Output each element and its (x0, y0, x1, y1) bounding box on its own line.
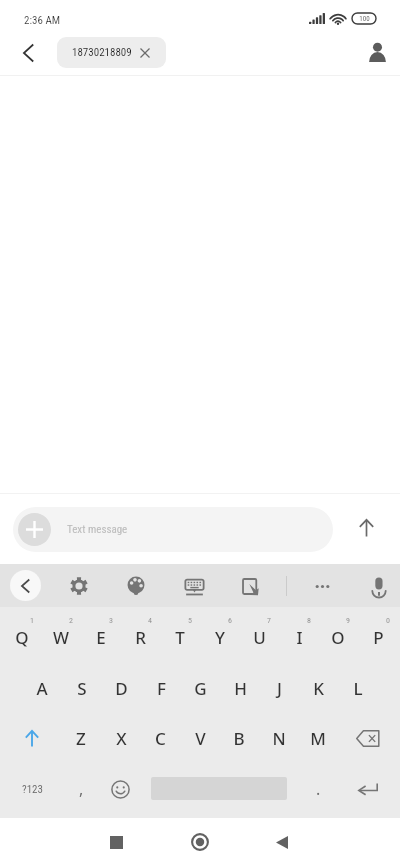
button[interactable]: A (23, 664, 61, 712)
staticText: 5 (188, 616, 192, 625)
staticText: Z (76, 727, 86, 750)
button[interactable]: Y (201, 613, 239, 661)
staticText: Text message (67, 523, 128, 536)
button[interactable]: Settings (61, 568, 97, 604)
staticText: N (272, 727, 286, 750)
button[interactable]: Z (62, 714, 100, 762)
button[interactable]: Recent apps (93, 819, 140, 865)
button[interactable]: T (161, 613, 199, 661)
staticText: 8 (307, 616, 311, 625)
staticText: M (310, 727, 326, 750)
staticText: W (53, 626, 69, 649)
staticText: 3 (109, 616, 113, 625)
button[interactable]: , (63, 765, 99, 813)
button[interactable]: Add attachment (13, 507, 333, 552)
button[interactable]: P (359, 613, 397, 661)
staticText: B (233, 727, 245, 750)
staticText: 1 (30, 616, 34, 625)
button[interactable]: F (142, 664, 180, 712)
button[interactable]: Q (3, 613, 41, 661)
button[interactable]: Emoji (102, 765, 139, 813)
staticText: S (77, 677, 87, 700)
button[interactable]: Hide toolbar (10, 570, 41, 601)
staticText: 2:36 AM (24, 14, 61, 27)
button[interactable]: Back (8, 33, 48, 73)
button[interactable]: I (280, 613, 318, 661)
staticText: L (353, 677, 363, 700)
button[interactable]: H (221, 664, 259, 712)
button[interactable]: Theme (118, 568, 154, 604)
button[interactable]: K (299, 664, 337, 712)
staticText: H (234, 677, 247, 700)
staticText: G (194, 677, 207, 700)
button[interactable]: Handwriting (232, 568, 268, 604)
button[interactable]: D (102, 664, 140, 712)
staticText: X (116, 727, 127, 750)
button[interactable]: V (181, 714, 219, 762)
staticText: R (135, 626, 146, 649)
button[interactable]: R (121, 613, 159, 661)
button[interactable]: Shift (12, 714, 51, 762)
button[interactable]: N (260, 714, 298, 762)
staticText: 4 (148, 616, 152, 625)
staticText: I (296, 626, 303, 649)
staticText: K (313, 677, 324, 700)
button[interactable]: G (181, 664, 219, 712)
button[interactable]: M (299, 714, 337, 762)
button[interactable]: More options (304, 568, 340, 604)
button[interactable]: Back (258, 819, 305, 865)
button[interactable]: 18730218809 (57, 37, 166, 68)
button[interactable]: Send (346, 508, 386, 548)
staticText: ?123 (22, 783, 43, 796)
staticText: O (331, 626, 345, 649)
staticText: U (253, 626, 266, 649)
staticText: Q (15, 626, 29, 649)
button[interactable]: B (220, 714, 258, 762)
button[interactable]: Enter (346, 765, 389, 813)
staticText: , (79, 778, 84, 800)
button[interactable]: E (82, 613, 120, 661)
button[interactable]: Keyboard layout (176, 568, 212, 604)
staticText: F (157, 677, 166, 700)
staticText: V (195, 727, 206, 750)
button[interactable]: . (300, 765, 336, 813)
button[interactable]: J (260, 664, 298, 712)
button[interactable]: W (42, 613, 80, 661)
staticText: E (96, 626, 106, 649)
other: Add attachment (18, 513, 51, 546)
button[interactable]: Backspace (346, 714, 389, 762)
staticText: C (155, 727, 166, 750)
staticText: J (277, 677, 282, 700)
staticText: 9 (346, 616, 350, 625)
staticText: . (316, 778, 321, 800)
staticText: T (175, 626, 185, 649)
button[interactable]: U (240, 613, 278, 661)
staticText: 18730218809 (72, 46, 132, 59)
staticText: P (373, 626, 384, 649)
staticText: 100 (359, 15, 370, 23)
button[interactable]: ?123 (8, 765, 56, 813)
button[interactable]: C (141, 714, 179, 762)
button[interactable]: S (63, 664, 101, 712)
staticText: 7 (267, 616, 271, 625)
button[interactable]: Home (177, 819, 223, 865)
staticText: 0 (386, 616, 390, 625)
staticText: 2 (69, 616, 73, 625)
button[interactable]: O (319, 613, 357, 661)
button[interactable]: Voice input (361, 568, 397, 604)
staticText: Y (215, 626, 225, 649)
button[interactable]: L (339, 664, 377, 712)
staticText: A (36, 677, 48, 700)
button[interactable]: X (102, 714, 140, 762)
staticText: 6 (228, 616, 232, 625)
staticText: D (115, 677, 128, 700)
button[interactable]: Contact details (357, 32, 397, 72)
